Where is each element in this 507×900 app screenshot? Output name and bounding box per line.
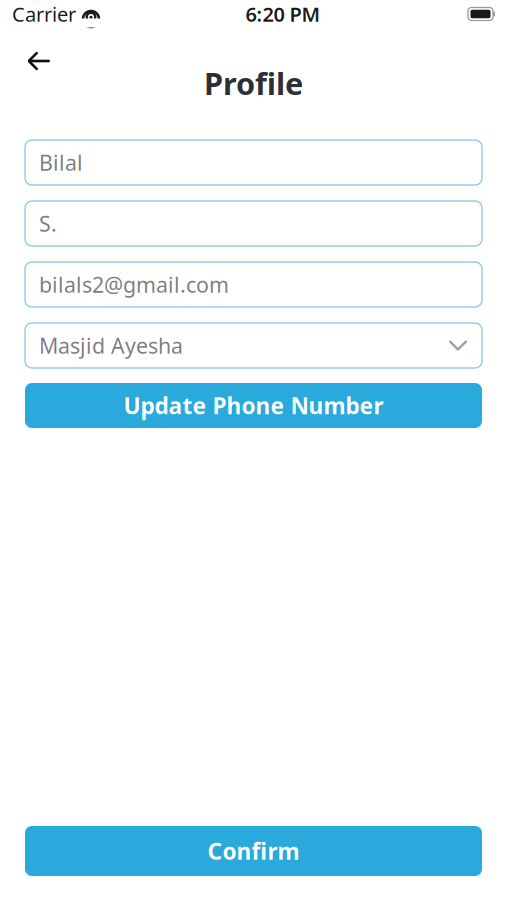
staticText: Profile bbox=[204, 63, 303, 103]
button[interactable]: Update Phone Number bbox=[25, 383, 482, 428]
staticText: bilals2@gmail.com bbox=[39, 270, 229, 299]
staticText: Bilal bbox=[39, 148, 83, 177]
staticText: Masjid Ayesha bbox=[39, 331, 183, 360]
staticText: Carrier bbox=[12, 1, 76, 27]
button[interactable]: S. bbox=[25, 201, 482, 246]
staticText: S. bbox=[39, 209, 57, 238]
button[interactable]: Bilal bbox=[25, 140, 482, 185]
staticText: Update Phone Number bbox=[123, 390, 383, 420]
button[interactable]: Confirm bbox=[25, 826, 482, 876]
button[interactable]: bilals2@gmail.com bbox=[25, 262, 482, 307]
button[interactable]: Back bbox=[16, 38, 62, 84]
staticText: Confirm bbox=[207, 836, 299, 866]
button[interactable]: Masjid Ayesha bbox=[25, 323, 482, 368]
staticText: 6:20 PM bbox=[245, 1, 320, 27]
